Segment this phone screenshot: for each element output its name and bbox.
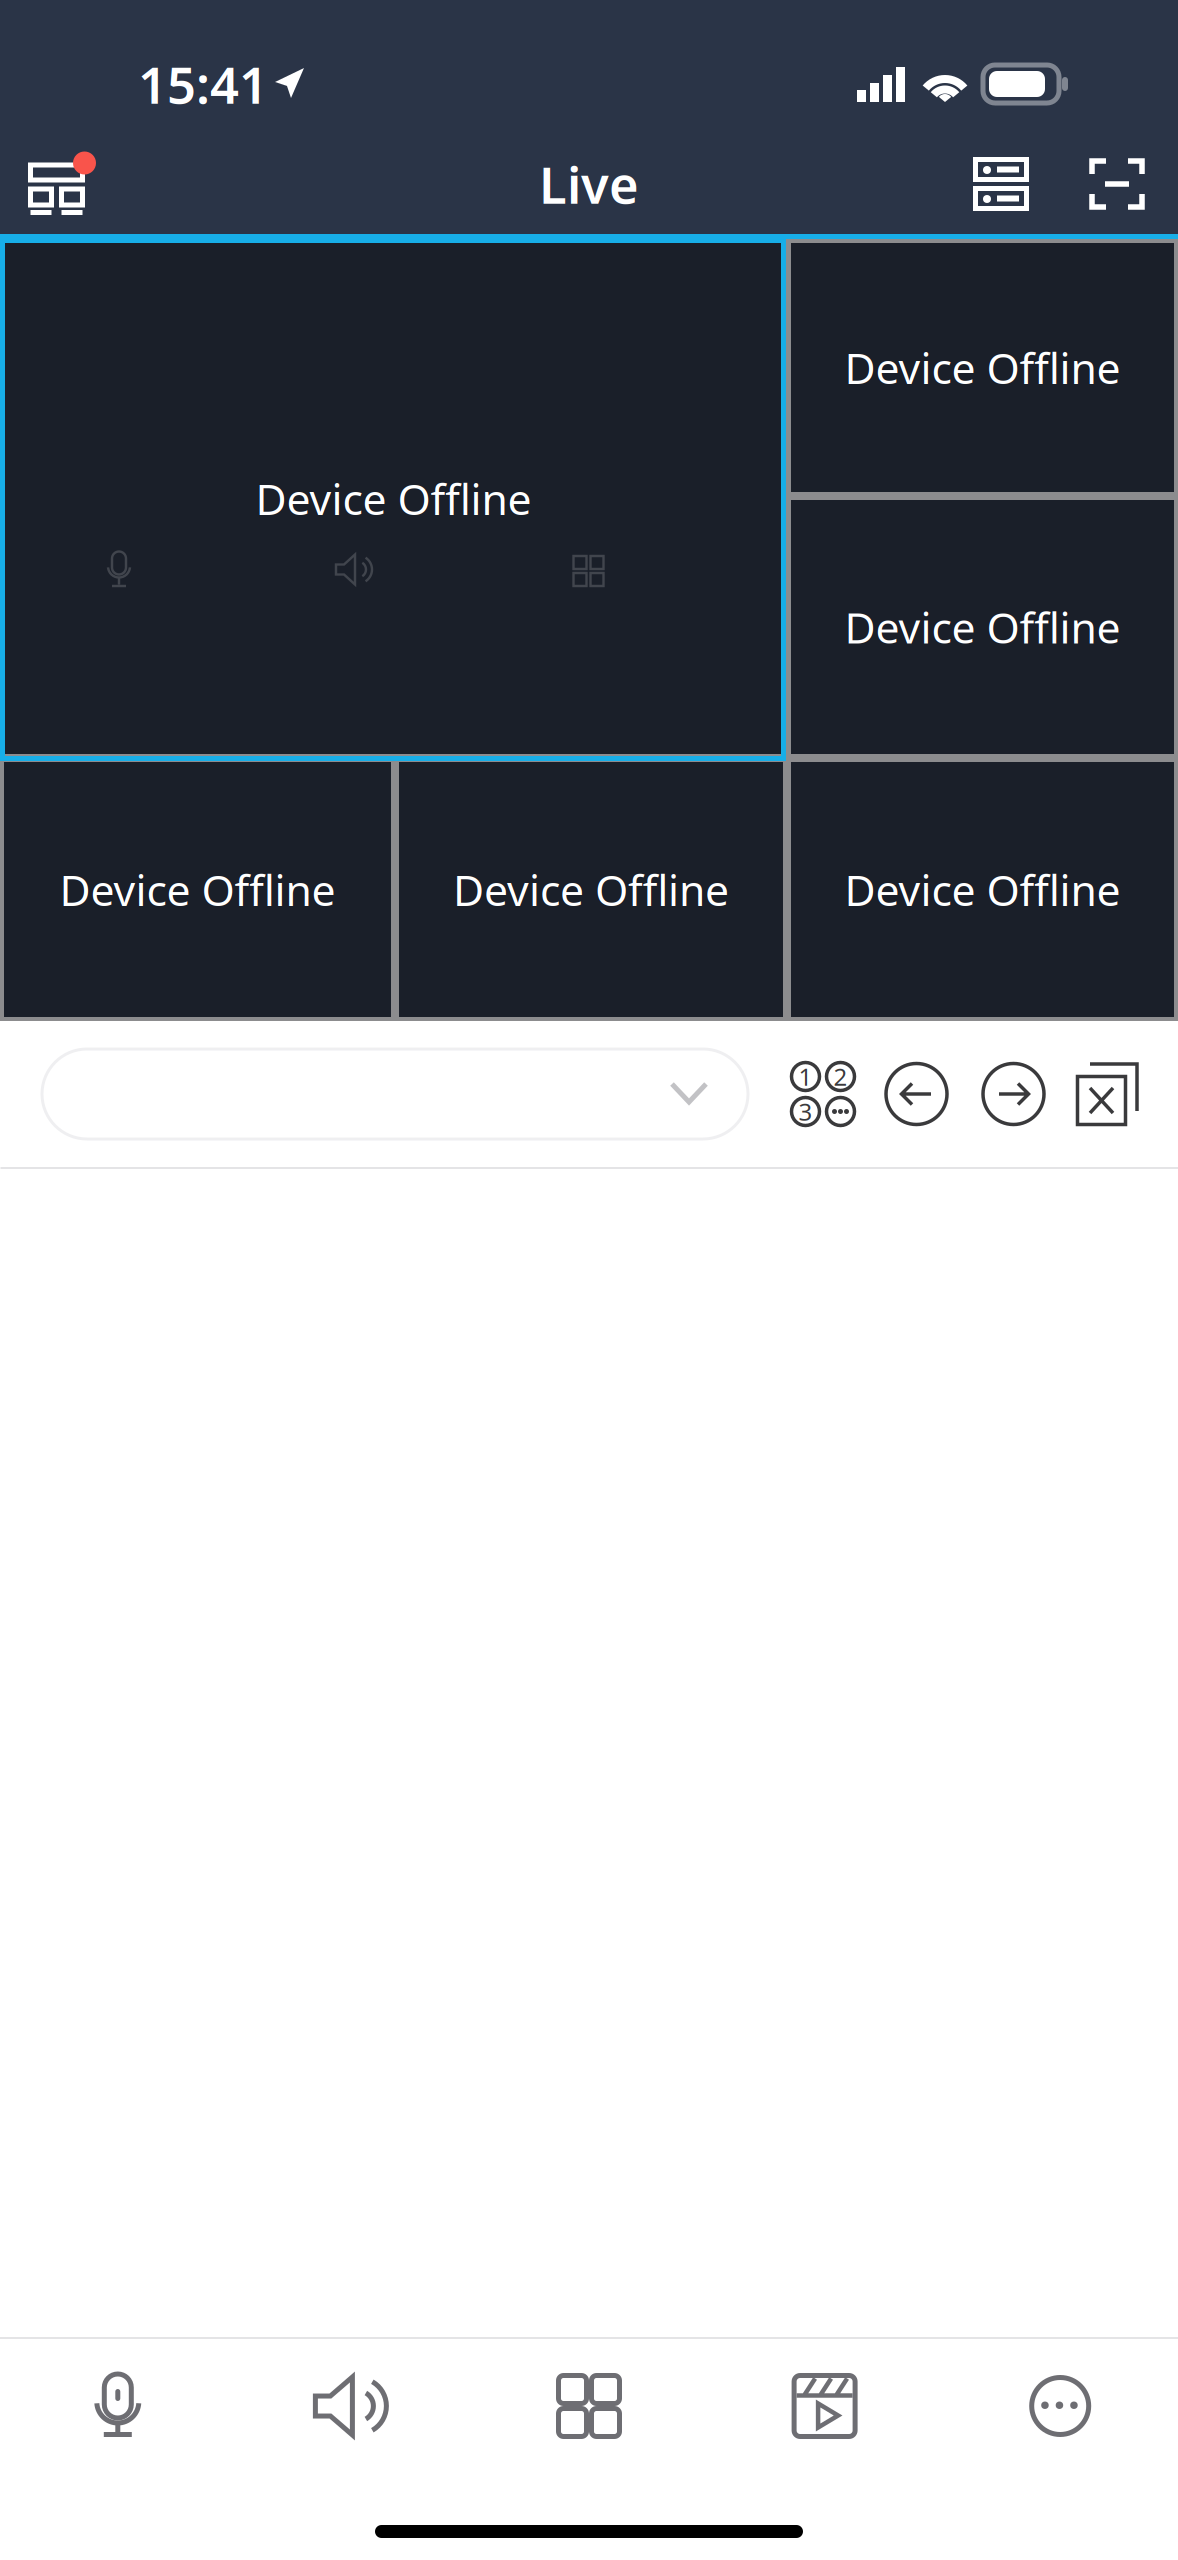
button[interactable]: Close all: [1075, 1060, 1140, 1128]
button[interactable]: Audio: [236, 2339, 471, 2473]
button[interactable]: Talk: [0, 2339, 236, 2473]
button[interactable]: Device Offline: [791, 762, 1174, 1017]
button[interactable]: Device Offline: [791, 500, 1174, 754]
button[interactable]: Device Offline: [4, 243, 783, 754]
button[interactable]: Select channel: [42, 1049, 748, 1139]
button[interactable]: Next page: [981, 1061, 1046, 1126]
button[interactable]: Device Offline: [399, 762, 783, 1017]
button[interactable]: Layout presets: [790, 1061, 856, 1127]
button[interactable]: Scan QR code: [1084, 151, 1150, 217]
staticText: Device Offline: [844, 339, 1120, 396]
staticText: Live: [539, 150, 639, 218]
button[interactable]: Device Offline: [791, 243, 1174, 492]
button[interactable]: More: [942, 2339, 1178, 2473]
button[interactable]: Device Offline: [4, 762, 391, 1017]
button[interactable]: Layouts: [26, 151, 98, 217]
button[interactable]: Devices: [968, 151, 1034, 217]
staticText: 3: [798, 1096, 812, 1127]
button[interactable]: Record: [707, 2339, 942, 2473]
staticText: 1: [798, 1061, 812, 1092]
button[interactable]: Previous page: [884, 1061, 949, 1126]
staticText: Device Offline: [255, 470, 531, 527]
button[interactable]: Split screen: [471, 2339, 707, 2473]
staticText: Device Offline: [59, 861, 335, 918]
staticText: Device Offline: [844, 599, 1120, 655]
staticText: Device Offline: [453, 861, 729, 918]
staticText: 2: [833, 1061, 847, 1092]
staticText: 15:41: [138, 50, 268, 118]
staticText: Device Offline: [844, 861, 1120, 918]
